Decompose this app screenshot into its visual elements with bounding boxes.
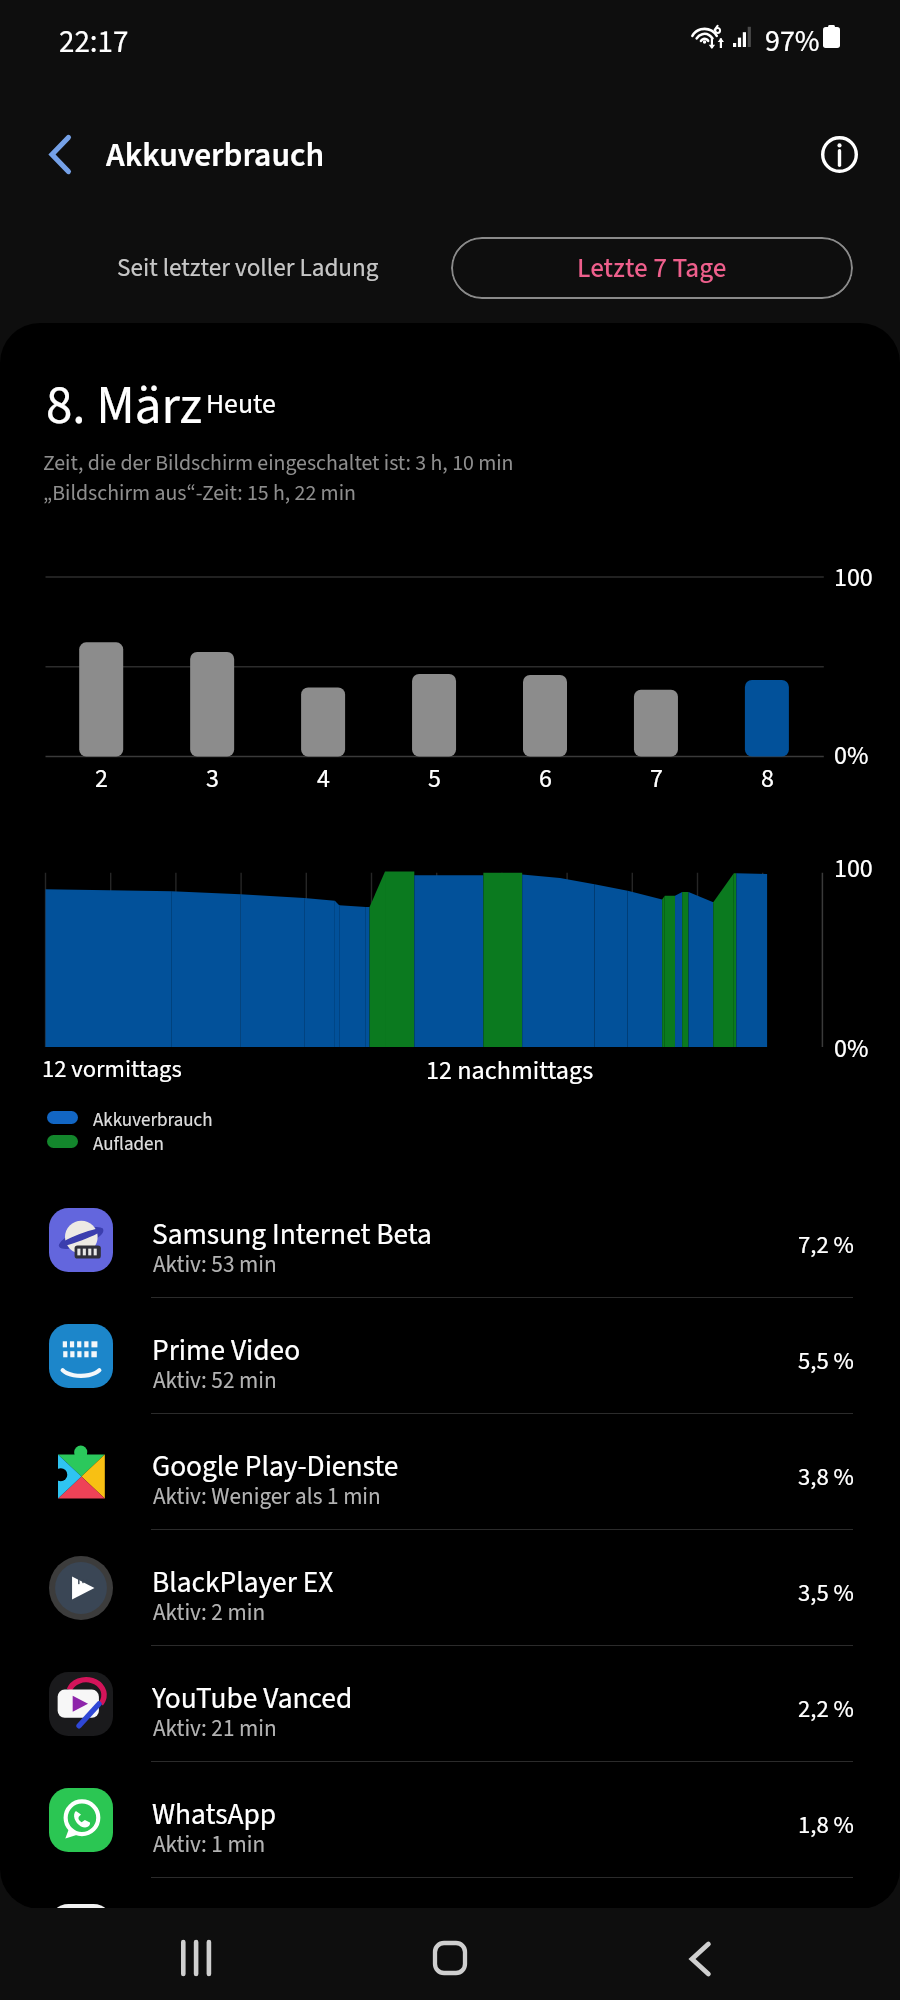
- staticText: 7: [650, 760, 663, 797]
- button[interactable]: Recents: [164, 1926, 228, 1990]
- staticText: „Bildschirm aus“-Zeit: 15 h, 22 min: [43, 478, 356, 509]
- staticText: Seit letzter voller Ladung: [117, 250, 379, 286]
- staticText: Prime Video: [152, 1330, 301, 1372]
- button[interactable]: BlackPlayer EX: [0, 1530, 900, 1646]
- staticText: 3,5 %: [798, 1576, 854, 1611]
- staticText: 100: [834, 850, 873, 887]
- staticText: 6: [539, 760, 552, 797]
- staticText: BlackPlayer EX: [152, 1562, 334, 1604]
- staticText: 2,2 %: [798, 1692, 854, 1727]
- staticText: WhatsApp: [152, 1794, 277, 1836]
- staticText: 3,8 %: [798, 1460, 854, 1495]
- staticText: Google Play-Dienste: [152, 1446, 399, 1488]
- staticText: YouTube Vanced: [152, 1678, 353, 1720]
- button[interactable]: Letzte 7 Tage: [451, 237, 853, 299]
- staticText: 97%: [765, 20, 820, 63]
- staticText: 1,8 %: [798, 1808, 854, 1843]
- staticText: Aktiv: Weniger als 1 min: [153, 1480, 381, 1513]
- button[interactable]: YouTube Vanced: [0, 1646, 900, 1762]
- staticText: 12 nachmittags: [426, 1052, 594, 1089]
- staticText: 3: [206, 760, 219, 797]
- staticText: Aktiv: 2 min: [153, 1596, 266, 1629]
- staticText: Zeit, die der Bildschirm eingeschaltet i…: [43, 448, 514, 479]
- button[interactable]: Prime Video: [0, 1298, 900, 1414]
- staticText: 100: [834, 559, 873, 596]
- staticText: 22:17: [59, 20, 129, 64]
- staticText: Aktiv: 52 min: [153, 1364, 277, 1397]
- staticText: Akkuverbrauch: [106, 132, 325, 180]
- staticText: 0%: [834, 1030, 869, 1067]
- staticText: 7,2 %: [798, 1228, 854, 1263]
- button[interactable]: Back: [668, 1927, 732, 1991]
- staticText: 4: [317, 760, 330, 797]
- button[interactable]: Information: [807, 122, 871, 186]
- button[interactable]: Seit letzter voller Ladung: [45, 237, 450, 299]
- button[interactable]: WhatsApp: [0, 1762, 900, 1878]
- staticText: 2: [95, 760, 108, 797]
- staticText: 8: [761, 760, 774, 797]
- button[interactable]: Samsung Internet Beta: [0, 1182, 900, 1298]
- button[interactable]: Home: [418, 1926, 482, 1990]
- staticText: Aktiv: 1 min: [153, 1828, 266, 1861]
- button[interactable]: Back: [28, 122, 92, 186]
- button[interactable]: Google Play-Dienste: [0, 1414, 900, 1530]
- staticText: Akkuverbrauch: [93, 1107, 213, 1134]
- staticText: 0%: [834, 737, 869, 774]
- staticText: 8. März: [46, 369, 203, 444]
- staticText: 5,5 %: [798, 1344, 854, 1379]
- staticText: 5: [428, 760, 441, 797]
- staticText: 12 vormittags: [42, 1052, 182, 1087]
- staticText: Letzte 7 Tage: [577, 249, 727, 288]
- staticText: Aufladen: [93, 1131, 164, 1158]
- staticText: Aktiv: 53 min: [153, 1248, 277, 1281]
- staticText: Heute: [206, 385, 276, 425]
- staticText: Samsung Internet Beta: [152, 1214, 432, 1256]
- staticText: Aktiv: 21 min: [153, 1712, 277, 1745]
